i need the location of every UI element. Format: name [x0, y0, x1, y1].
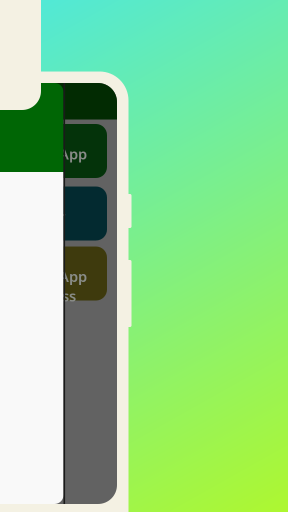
staticText: Twitter — [14, 206, 65, 226]
staticText: WhatsApp Business — [14, 266, 87, 305]
button[interactable]: WhatsApp Business — [2, 249, 107, 303]
button[interactable]: WhatsApp — [2, 124, 107, 178]
staticText: WhatsApp — [14, 144, 87, 163]
button[interactable]: Twitter — [2, 186, 107, 240]
